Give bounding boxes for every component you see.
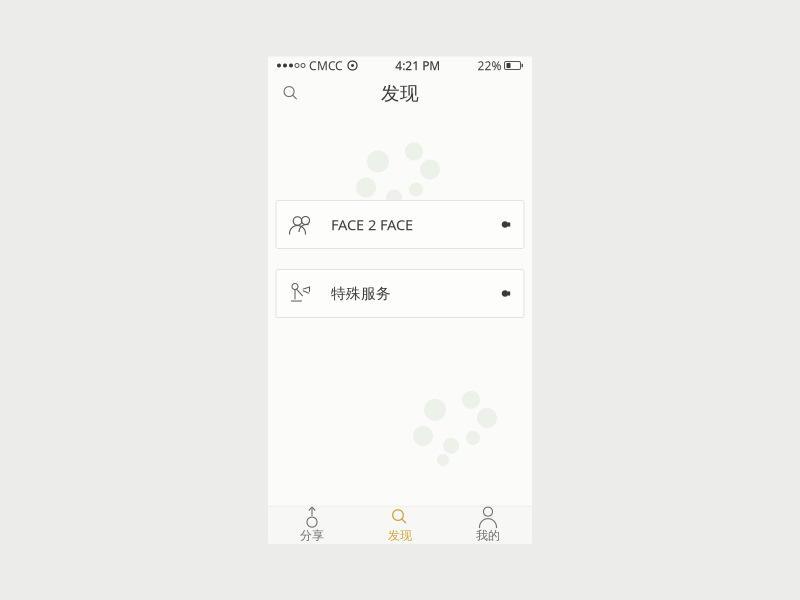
button[interactable]: FACE 2 FACE [276,200,524,248]
button[interactable]: 我的 [444,506,532,543]
button[interactable]: 分享 [268,506,356,543]
staticText: CMCC [309,57,343,73]
staticText: 我的 [476,528,500,543]
staticText: 22% [477,57,501,73]
staticText: 4:21 PM [395,57,440,73]
staticText: FACE 2 FACE [331,215,413,234]
staticText: 分享 [300,528,324,543]
staticText: 特殊服务 [331,284,391,302]
button[interactable]: 特殊服务 [276,269,524,317]
staticText: 发现 [381,82,419,105]
staticText: 发现 [388,528,412,543]
button[interactable]: Search [274,76,308,110]
button[interactable]: 发现 [356,506,444,543]
